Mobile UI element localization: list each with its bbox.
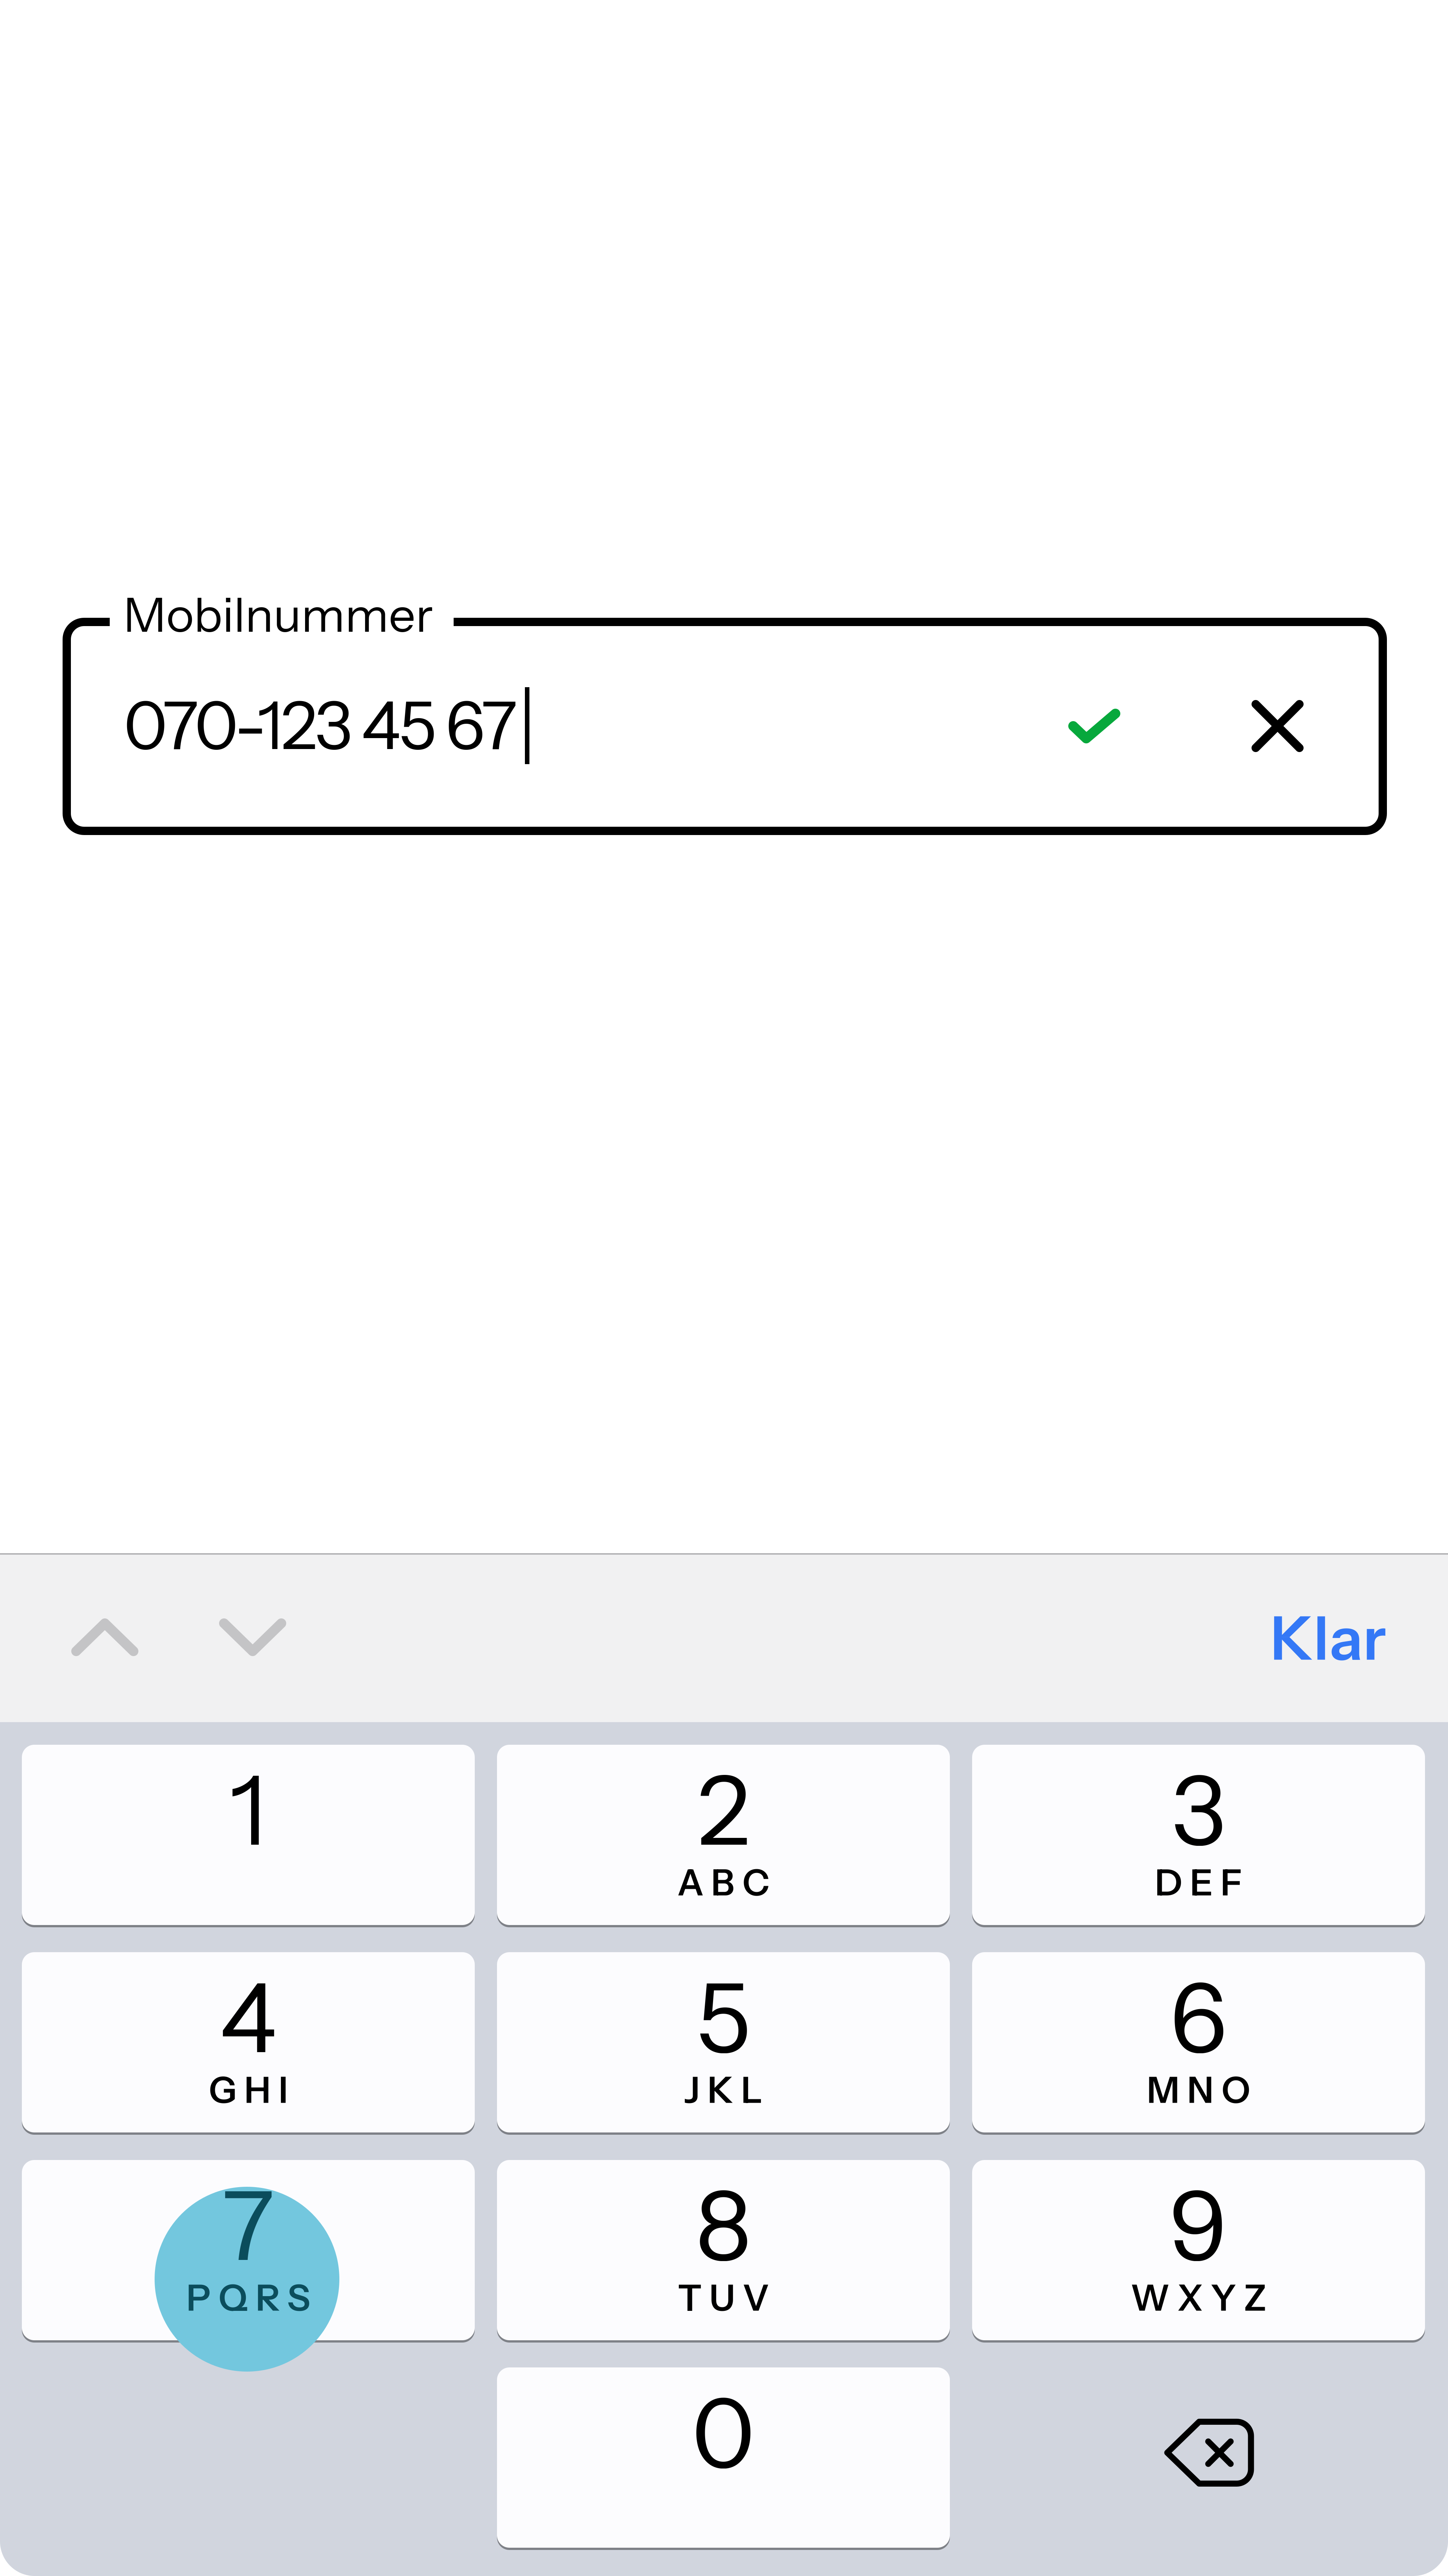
button[interactable]: Number is valid xyxy=(1068,709,1120,743)
button[interactable]: Previous field xyxy=(71,1618,138,1656)
button[interactable]: Klar xyxy=(1131,1554,1386,1722)
button[interactable] xyxy=(497,2367,950,2548)
button[interactable] xyxy=(22,1745,475,1925)
staticText: MNO xyxy=(1147,2068,1250,2112)
staticText: PQRS xyxy=(186,2276,310,2320)
button[interactable]: Delete xyxy=(972,2367,1425,2548)
staticText: Mobilnummer xyxy=(123,586,433,644)
staticText: 7 xyxy=(223,2167,274,2284)
staticText: TUV xyxy=(678,2276,769,2320)
staticText: 1 xyxy=(230,1752,267,1869)
staticText: 8 xyxy=(696,2167,751,2284)
button[interactable] xyxy=(22,1952,475,2132)
staticText: JKL xyxy=(684,2068,763,2112)
staticText: PQRS xyxy=(186,2276,310,2320)
staticText: 6 xyxy=(1170,1960,1227,2076)
button[interactable]: Clear text xyxy=(1252,700,1304,752)
staticText: 4 xyxy=(220,1960,277,2076)
staticText: 7 xyxy=(223,2167,274,2284)
button[interactable] xyxy=(497,1745,950,1925)
button[interactable]: Next field xyxy=(219,1618,286,1656)
staticText: 2 xyxy=(697,1752,749,1869)
staticText: 5 xyxy=(696,1960,751,2076)
staticText: GHI xyxy=(209,2068,288,2112)
button[interactable] xyxy=(972,1745,1425,1925)
button[interactable] xyxy=(497,1952,950,2132)
button[interactable] xyxy=(497,2160,950,2340)
staticText: 070-123 45 67 xyxy=(124,685,517,765)
staticText: 0 xyxy=(692,2375,755,2491)
button[interactable] xyxy=(22,2160,475,2340)
staticText: DEF xyxy=(1155,1860,1242,1904)
staticText: ABC xyxy=(677,1860,770,1904)
button[interactable] xyxy=(972,1952,1425,2132)
button[interactable] xyxy=(972,2160,1425,2340)
staticText: 3 xyxy=(1171,1752,1226,1869)
staticText: Klar xyxy=(1270,1601,1386,1675)
staticText: WXYZ xyxy=(1130,2276,1267,2320)
staticText: 9 xyxy=(1169,2167,1228,2284)
